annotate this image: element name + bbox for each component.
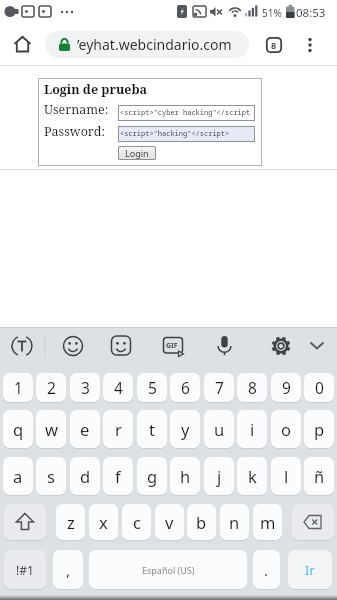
staticText: k xyxy=(248,465,257,487)
button[interactable]: 7 xyxy=(204,373,234,402)
staticText: e xyxy=(80,418,90,440)
staticText: y xyxy=(181,418,190,440)
staticText: m xyxy=(260,511,276,533)
staticText: 6 xyxy=(181,377,190,398)
staticText: , xyxy=(66,560,71,580)
button[interactable]: !#1 xyxy=(4,550,46,589)
button[interactable]: 4 xyxy=(103,373,133,402)
button[interactable]: <script>"cyber hacking"</script xyxy=(118,105,255,121)
button[interactable] xyxy=(0,327,49,365)
button[interactable]: <script>"hacking"</script> xyxy=(118,126,255,142)
button[interactable]: w xyxy=(36,410,66,448)
staticText: Ir xyxy=(305,561,315,579)
staticText: Login de prueba xyxy=(44,81,148,98)
button[interactable]: 8 xyxy=(266,37,282,53)
button[interactable]: o xyxy=(271,410,301,448)
button[interactable]: 5 xyxy=(137,373,167,402)
staticText: 51% xyxy=(262,6,282,20)
button[interactable]: m xyxy=(253,504,282,540)
button[interactable]: 0 xyxy=(304,373,334,402)
button[interactable]: f xyxy=(103,457,133,495)
button[interactable]: y xyxy=(170,410,200,448)
button[interactable]: 1 xyxy=(3,373,33,402)
staticText: <script>"hacking"</script> xyxy=(120,129,230,139)
staticText: c xyxy=(133,511,141,533)
staticText: 1 xyxy=(14,377,23,398)
button[interactable]: r xyxy=(103,410,133,448)
button[interactable]: 3 xyxy=(70,373,100,402)
button[interactable]: z xyxy=(56,504,85,540)
staticText: r xyxy=(115,418,122,440)
staticText: w xyxy=(45,418,58,440)
button[interactable]: s xyxy=(36,457,66,495)
button[interactable] xyxy=(145,327,193,365)
staticText: Username: xyxy=(44,101,109,118)
staticText: x xyxy=(99,511,108,533)
button[interactable]: 2 xyxy=(36,373,66,402)
button[interactable]: . xyxy=(253,550,280,589)
button[interactable]: Español (US) xyxy=(89,550,247,589)
button[interactable]: 8 xyxy=(237,373,267,402)
button[interactable]: j xyxy=(204,457,234,495)
staticText: !#1 xyxy=(16,562,34,578)
button[interactable]: x xyxy=(89,504,118,540)
button[interactable]: Ir xyxy=(288,550,332,589)
staticText: 9 xyxy=(282,377,291,398)
button[interactable] xyxy=(193,327,241,365)
button[interactable]: 9 xyxy=(271,373,301,402)
button[interactable]: v xyxy=(155,504,184,540)
button[interactable]: g xyxy=(137,457,167,495)
staticText: d xyxy=(80,465,91,487)
staticText: ’eyhat.webcindario.com xyxy=(77,35,232,54)
staticText: Español (US) xyxy=(142,564,195,576)
staticText: s xyxy=(47,465,55,487)
staticText: 8 xyxy=(248,377,257,398)
staticText: GIF xyxy=(166,341,178,351)
button[interactable]: q xyxy=(3,410,33,448)
staticText: o xyxy=(281,418,291,440)
button[interactable] xyxy=(301,36,319,54)
staticText: z xyxy=(67,511,75,533)
button[interactable] xyxy=(13,35,32,54)
staticText: b xyxy=(196,511,207,533)
staticText: u xyxy=(214,418,225,440)
button[interactable]: Login xyxy=(118,146,156,160)
staticText: Password: xyxy=(44,123,105,140)
staticText: v xyxy=(165,511,174,533)
button[interactable]: d xyxy=(70,457,100,495)
button[interactable] xyxy=(49,327,97,365)
button[interactable]: l xyxy=(271,457,301,495)
button[interactable]: t xyxy=(137,410,167,448)
button[interactable]: ’eyhat.webcindario.com xyxy=(45,31,249,58)
button[interactable]: i xyxy=(237,410,267,448)
button[interactable]: h xyxy=(170,457,200,495)
button[interactable]: u xyxy=(204,410,234,448)
staticText: i xyxy=(250,418,255,440)
staticText: ñ xyxy=(314,465,325,487)
staticText: g xyxy=(147,465,158,487)
button[interactable]: k xyxy=(237,457,267,495)
staticText: 7 xyxy=(215,377,224,398)
button[interactable]: , xyxy=(53,550,83,589)
button[interactable]: b xyxy=(187,504,216,540)
staticText: n xyxy=(229,511,240,533)
button[interactable] xyxy=(241,327,289,365)
button[interactable] xyxy=(97,327,145,365)
button[interactable]: e xyxy=(70,410,100,448)
staticText: a xyxy=(13,465,23,487)
button[interactable]: ñ xyxy=(304,457,334,495)
button[interactable] xyxy=(292,504,334,540)
button[interactable]: 6 xyxy=(170,373,200,402)
button[interactable]: p xyxy=(304,410,334,448)
staticText: 2 xyxy=(47,377,56,398)
button[interactable]: c xyxy=(122,504,151,540)
staticText: Login xyxy=(125,147,149,159)
staticText: 0 xyxy=(315,377,324,398)
staticText: . xyxy=(264,560,269,580)
button[interactable]: n xyxy=(220,504,249,540)
button[interactable]: a xyxy=(3,457,33,495)
button[interactable] xyxy=(4,504,46,540)
button[interactable] xyxy=(289,327,337,365)
staticText: j xyxy=(217,465,222,487)
staticText: q xyxy=(13,418,24,440)
